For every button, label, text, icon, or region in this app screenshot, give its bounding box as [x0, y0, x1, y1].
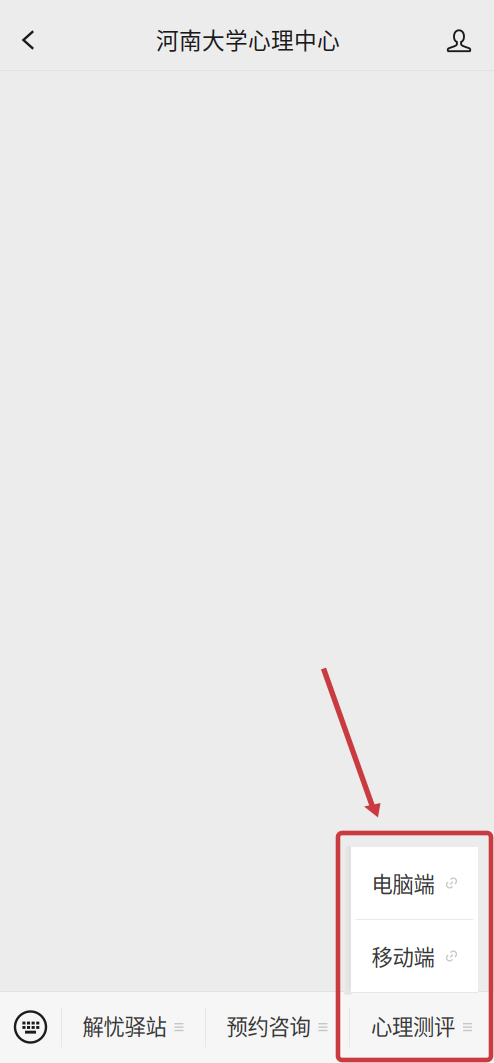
staticText: 河南大学心理中心 — [156, 23, 340, 55]
staticText: 移动端 — [371, 941, 434, 971]
button[interactable]: Contacts — [438, 21, 480, 61]
button[interactable]: 解忧驿站 — [61, 991, 205, 1063]
button[interactable]: Keyboard — [0, 991, 61, 1063]
button[interactable]: 电脑端 — [351, 847, 478, 919]
staticText: 电脑端 — [371, 868, 434, 898]
button[interactable]: 心理测评 — [349, 991, 494, 1063]
button[interactable]: 预约咨询 — [205, 991, 349, 1063]
staticText: 心理测评 — [371, 1010, 455, 1041]
staticText: 解忧驿站 — [82, 1010, 166, 1041]
button[interactable]: 移动端 — [351, 920, 478, 992]
button[interactable]: Back — [7, 20, 49, 60]
staticText: 预约咨询 — [226, 1010, 310, 1041]
